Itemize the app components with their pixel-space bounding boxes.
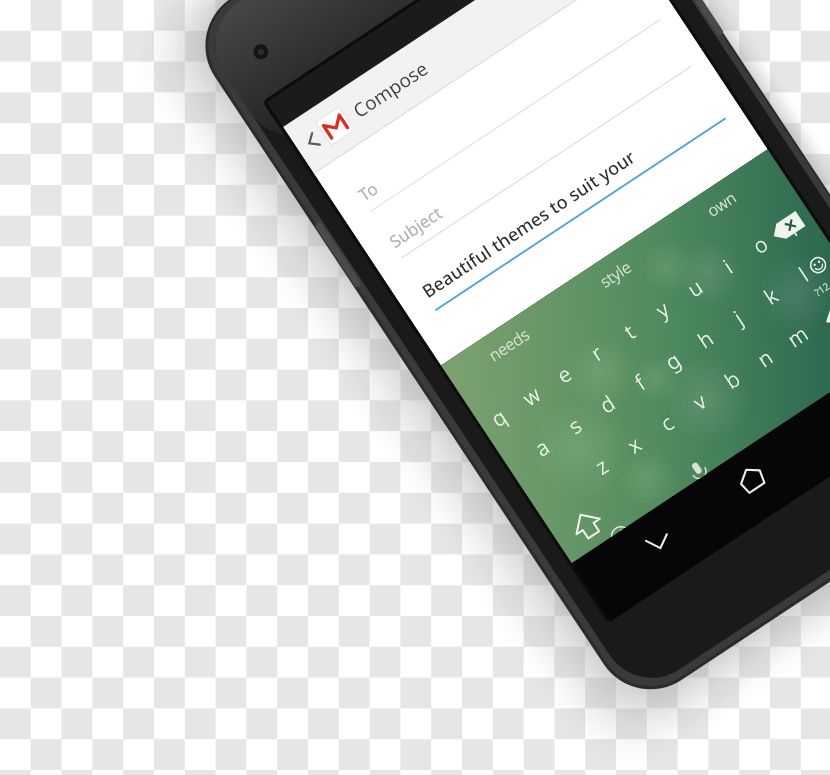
button[interactable]: Gmail compose with SwiftKey keyboard on … bbox=[0, 0, 830, 775]
